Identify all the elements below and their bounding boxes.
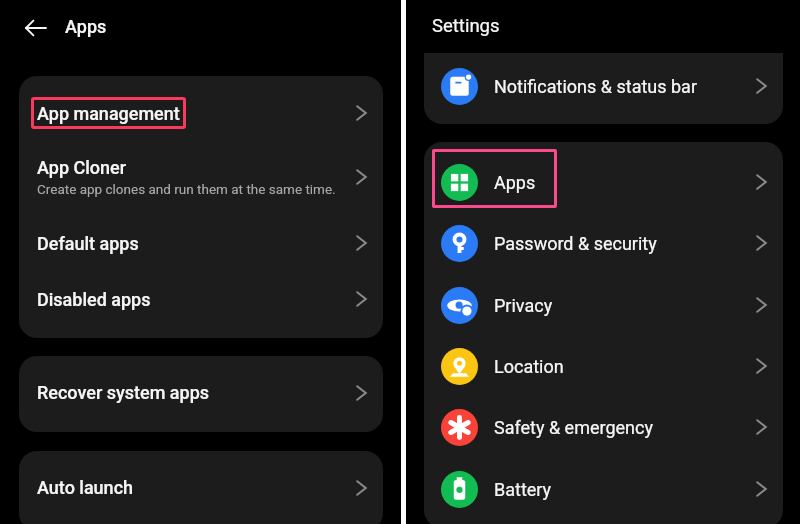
staticText: Privacy: [494, 295, 553, 316]
button[interactable]: App management: [19, 77, 383, 149]
staticText: Default apps: [37, 233, 139, 254]
staticText: App Cloner: [37, 157, 127, 178]
staticText: Password & security: [494, 233, 657, 254]
staticText: Battery: [494, 479, 552, 500]
staticText: Apps: [494, 172, 536, 193]
button[interactable]: Recover system apps: [19, 356, 383, 429]
button[interactable]: Apps: [424, 152, 783, 212]
button[interactable]: Safety & emergency: [424, 397, 783, 457]
staticText: Safety & emergency: [494, 417, 653, 438]
button[interactable]: Privacy: [424, 275, 783, 335]
staticText: Location: [494, 356, 564, 377]
button[interactable]: Back: [17, 9, 54, 46]
button[interactable]: Notifications & status bar: [424, 56, 783, 116]
button[interactable]: App Cloner: [19, 137, 383, 217]
staticText: Create app clones and run them at the sa…: [37, 181, 336, 197]
button[interactable]: Battery: [424, 459, 783, 519]
staticText: Settings: [432, 15, 500, 37]
button[interactable]: Disabled apps: [19, 273, 383, 325]
staticText: Notifications & status bar: [494, 76, 697, 97]
button[interactable]: Default apps: [19, 216, 383, 270]
staticText: Apps: [65, 16, 107, 37]
button[interactable]: Location: [424, 336, 783, 396]
button[interactable]: Auto launch: [19, 451, 383, 524]
button[interactable]: Password & security: [424, 213, 783, 273]
staticText: Recover system apps: [37, 382, 210, 403]
staticText: App management: [37, 103, 180, 124]
staticText: Auto launch: [37, 477, 134, 498]
staticText: Disabled apps: [37, 289, 151, 310]
